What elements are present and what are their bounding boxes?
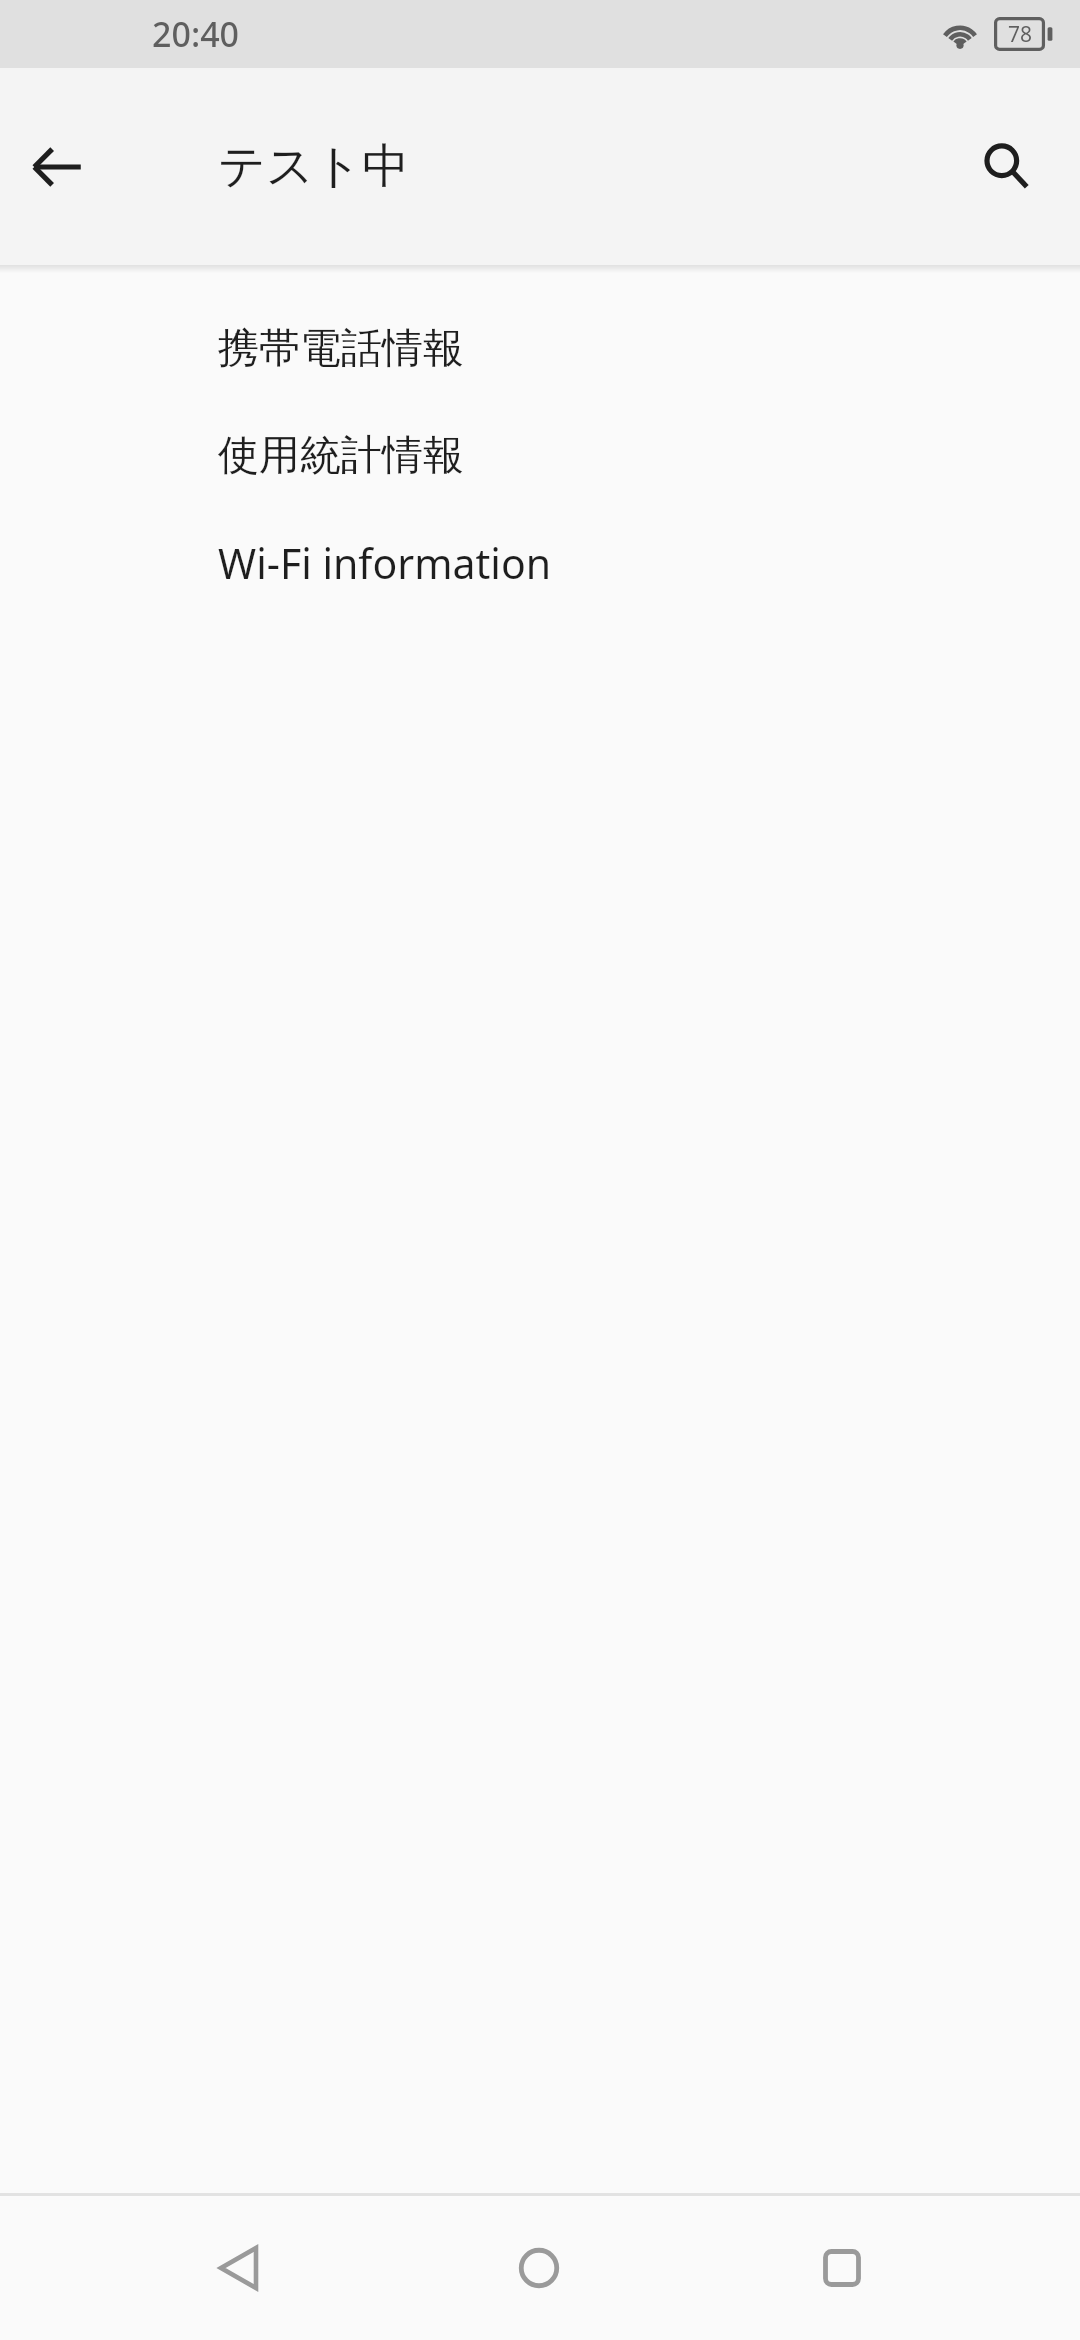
button[interactable]: Back [11,121,103,213]
button[interactable]: 使用統計情報 [0,402,1080,509]
staticText: 20:40 [152,11,240,57]
staticText: 78 [1008,20,1033,49]
button[interactable]: Home [474,2196,604,2340]
staticText: Wi-Fi information [218,535,552,591]
staticText: 使用統計情報 [218,430,464,482]
button[interactable]: Search [961,121,1053,213]
button[interactable]: Back [172,2196,302,2340]
button[interactable]: Recents [777,2196,907,2340]
staticText: 携帯電話情報 [218,323,464,375]
staticText: テスト中 [218,137,410,196]
button[interactable]: Wi-Fi information [0,509,1080,616]
button[interactable]: 携帯電話情報 [0,295,1080,402]
